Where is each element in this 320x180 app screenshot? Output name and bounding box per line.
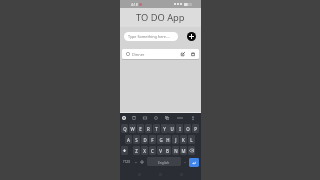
button[interactable]: Z (133, 146, 140, 155)
button[interactable]: Delete (190, 51, 196, 57)
button[interactable]: N (172, 146, 179, 155)
staticText: R (147, 126, 150, 132)
staticText: J (175, 137, 177, 143)
button[interactable]: Clipboard (131, 115, 137, 121)
staticText: K (182, 137, 185, 143)
button[interactable]: Backspace (188, 146, 195, 155)
staticText: A (127, 137, 130, 143)
button[interactable]: More options (177, 115, 183, 121)
button[interactable]: Dinner (122, 49, 199, 59)
staticText: L (190, 137, 193, 143)
button[interactable]: Theme (153, 115, 159, 121)
staticText: I (179, 126, 181, 132)
staticText: S (135, 137, 138, 143)
staticText: E (139, 126, 142, 132)
button[interactable]: V (157, 146, 164, 155)
button[interactable]: GIF (142, 115, 148, 121)
button[interactable]: L (188, 135, 195, 144)
button[interactable]: A (125, 135, 132, 144)
staticText: Y (163, 126, 166, 132)
staticText: G (159, 137, 163, 143)
staticText: F (151, 137, 154, 143)
button[interactable]: J (172, 135, 179, 144)
button[interactable]: Add task (187, 32, 196, 41)
staticText: Dinner (132, 52, 145, 57)
button[interactable]: O (184, 124, 191, 133)
staticText: Z (135, 148, 138, 154)
button[interactable]: Enter (189, 158, 199, 167)
button[interactable]: Google search (121, 115, 127, 121)
button[interactable]: W (129, 124, 136, 133)
button[interactable]: Emoji (139, 157, 145, 166)
staticText: W (130, 126, 135, 132)
button[interactable]: Y (161, 124, 168, 133)
button[interactable]: Voice input (190, 115, 196, 121)
staticText: M (181, 148, 186, 154)
button[interactable]: Q (121, 124, 128, 133)
button[interactable]: E (137, 124, 144, 133)
staticText: H (166, 137, 170, 143)
button[interactable]: C (149, 146, 156, 155)
button[interactable]: Translate (164, 115, 170, 121)
staticText: TO DO App (136, 11, 185, 24)
staticText: 4:18 (131, 2, 138, 7)
button[interactable]: Period (182, 157, 187, 166)
staticText: Type Something here.... (128, 34, 171, 39)
button[interactable]: G (157, 135, 164, 144)
button[interactable]: X (141, 146, 148, 155)
button[interactable]: T (153, 124, 160, 133)
button[interactable]: Symbols (122, 157, 131, 166)
staticText: Q (123, 126, 127, 132)
staticText: N (174, 148, 178, 154)
button[interactable]: K (180, 135, 187, 144)
button[interactable]: Type Something here.... (124, 32, 178, 41)
button[interactable]: Edit (180, 51, 186, 57)
button[interactable]: U (168, 124, 175, 133)
staticText: P (194, 126, 197, 132)
button[interactable]: M (180, 146, 187, 155)
button[interactable]: D (141, 135, 148, 144)
button[interactable]: H (164, 135, 171, 144)
button[interactable]: Space (147, 157, 181, 166)
staticText: U (170, 126, 174, 132)
staticText: English (158, 160, 170, 164)
button[interactable]: Comma (133, 157, 138, 166)
staticText: T (155, 126, 158, 132)
button[interactable]: P (192, 124, 199, 133)
button[interactable]: I (176, 124, 183, 133)
button[interactable]: S (133, 135, 140, 144)
staticText: V (159, 148, 162, 154)
staticText: ?123 (123, 160, 130, 164)
button[interactable]: F (149, 135, 156, 144)
button[interactable]: Shift (121, 146, 128, 155)
staticText: X (143, 148, 146, 154)
staticText: B (166, 148, 169, 154)
button[interactable]: R (145, 124, 152, 133)
staticText: C (151, 148, 154, 154)
staticText: O (186, 126, 190, 132)
staticText: D (143, 137, 147, 143)
button[interactable]: B (164, 146, 171, 155)
